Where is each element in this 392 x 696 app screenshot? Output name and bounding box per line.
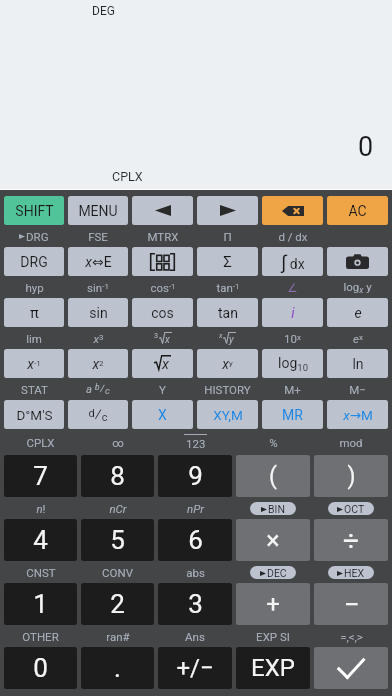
staticText: DRG	[26, 230, 49, 243]
button[interactable]: sin	[68, 298, 128, 327]
button[interactable]: OCT	[328, 502, 374, 515]
staticText: OCT	[344, 503, 365, 515]
button[interactable]: Square root	[132, 349, 193, 378]
button[interactable]: e	[327, 298, 388, 327]
staticText: %	[269, 436, 278, 449]
button[interactable]: SHIFT	[4, 196, 64, 225]
staticText: EXP SI	[256, 630, 290, 643]
button[interactable]: X	[132, 400, 193, 429]
button[interactable]: ÷	[314, 519, 388, 561]
button[interactable]: tan	[197, 298, 258, 327]
staticText: x	[219, 331, 223, 339]
staticText: tan	[218, 305, 238, 321]
staticText: Y	[159, 383, 166, 396]
button[interactable]: d⁄c	[68, 400, 128, 429]
button[interactable]: x-1	[4, 349, 64, 378]
staticText: =,<,>	[340, 630, 363, 643]
button[interactable]: Left	[132, 196, 193, 225]
staticText: ex	[353, 332, 363, 345]
staticText: lim	[26, 332, 42, 345]
button[interactable]: DEC	[250, 566, 296, 579]
staticText: sin	[89, 305, 108, 321]
button[interactable]: xy	[197, 349, 258, 378]
staticText: XY,M	[213, 407, 243, 423]
staticText: 7	[33, 461, 48, 491]
button[interactable]: +/−	[158, 647, 232, 689]
button[interactable]: Equals	[314, 647, 388, 689]
button[interactable]: ln	[327, 349, 388, 378]
button[interactable]: )	[314, 455, 388, 497]
staticText: DEC	[267, 567, 287, 579]
staticText: log10	[278, 355, 308, 373]
button[interactable]: BIN	[250, 502, 296, 515]
button[interactable]: 3	[158, 583, 232, 625]
staticText: ÷	[343, 524, 359, 557]
button[interactable]: 6	[158, 519, 232, 561]
button[interactable]: DRG	[4, 247, 64, 276]
staticText: nCr	[109, 502, 127, 515]
staticText: DEG	[92, 4, 115, 18]
staticText: a b⁄c	[86, 382, 110, 397]
button[interactable]: XY,M	[197, 400, 258, 429]
staticText: 1	[33, 589, 48, 619]
staticText: 3	[154, 331, 159, 339]
button[interactable]: Right	[197, 196, 258, 225]
button[interactable]: AC	[327, 196, 388, 225]
staticText: FSE	[88, 230, 108, 243]
staticText: cos-1	[150, 281, 176, 294]
button[interactable]: .	[81, 647, 154, 689]
button[interactable]: i	[262, 298, 323, 327]
button[interactable]: 2	[81, 583, 154, 625]
button[interactable]: MENU	[68, 196, 128, 225]
button[interactable]: ×	[236, 519, 310, 561]
button[interactable]: Delete	[262, 196, 323, 225]
staticText: 5	[110, 525, 125, 555]
button[interactable]: 4	[4, 519, 77, 561]
button[interactable]: x2	[68, 349, 128, 378]
staticText: DRG	[20, 254, 48, 270]
button[interactable]: (	[236, 455, 310, 497]
button[interactable]: x→M	[327, 400, 388, 429]
button[interactable]: 5	[81, 519, 154, 561]
button[interactable]: ∫ dx	[262, 247, 323, 276]
button[interactable]: Matrix	[132, 247, 193, 276]
button[interactable]: 8	[81, 455, 154, 497]
staticText: cos	[151, 305, 174, 321]
staticText: ∫ dx	[281, 251, 305, 273]
button[interactable]: D°M'S	[4, 400, 64, 429]
staticText: M−	[349, 383, 366, 396]
staticText: x2	[92, 356, 104, 372]
staticText: D°M'S	[16, 407, 53, 423]
staticText: BIN	[268, 503, 285, 515]
button[interactable]: 9	[158, 455, 232, 497]
staticText: ∞	[112, 436, 124, 449]
button[interactable]: log10	[262, 349, 323, 378]
button[interactable]: Camera	[327, 247, 388, 276]
staticText: CPLX	[26, 436, 55, 449]
staticText: SHIFT	[15, 203, 54, 219]
button[interactable]: −	[314, 583, 388, 625]
button[interactable]: HEX	[328, 566, 374, 579]
staticText: x-1	[27, 356, 41, 372]
button[interactable]: MR	[262, 400, 323, 429]
button[interactable]: 0	[4, 647, 77, 689]
button[interactable]: 1	[4, 583, 77, 625]
staticText: n!	[36, 502, 46, 515]
staticText: CNST	[26, 566, 56, 579]
staticText: ∠	[287, 281, 298, 294]
button[interactable]: +	[236, 583, 310, 625]
staticText: e	[354, 305, 362, 321]
staticText: MR	[282, 407, 303, 423]
staticText: 10x	[284, 332, 301, 345]
button[interactable]: cos	[132, 298, 193, 327]
button[interactable]: 7	[4, 455, 77, 497]
staticText: HISTORY	[204, 383, 251, 396]
staticText: x3	[93, 332, 104, 345]
button[interactable]: EXP	[236, 647, 310, 689]
button[interactable]: Σ	[197, 247, 258, 276]
button[interactable]: π	[4, 298, 64, 327]
button[interactable]: x⇔E	[68, 247, 128, 276]
staticText: CPLX	[112, 169, 143, 184]
staticText: i	[291, 305, 295, 321]
staticText: logx y	[343, 280, 372, 295]
